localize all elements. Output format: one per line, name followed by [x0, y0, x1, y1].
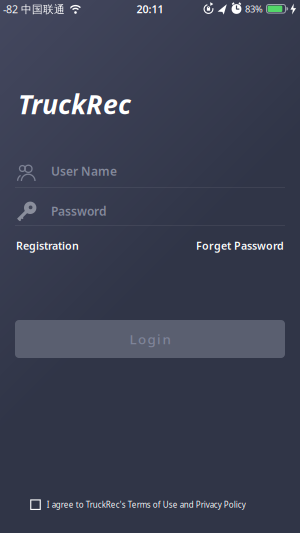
staticText: User Name [51, 163, 117, 179]
staticText: TruckRec [18, 86, 131, 122]
staticText: 83% [245, 3, 263, 15]
staticText: Login [129, 330, 170, 348]
button[interactable]: Registration [16, 238, 79, 253]
staticText: -82 中国联通 [3, 2, 65, 16]
staticText: Password [51, 203, 107, 219]
staticText: Forget Password [196, 238, 284, 253]
button[interactable]: Login [15, 320, 285, 358]
button[interactable]: Forget Password [196, 238, 284, 253]
button[interactable]: I agree to TruckRec's Terms of Use and P… [30, 499, 246, 510]
staticText: Registration [16, 238, 79, 253]
staticText: I agree to TruckRec's Terms of Use and P… [47, 499, 246, 510]
button[interactable]: User Name [0, 160, 300, 182]
button[interactable]: Password [0, 201, 300, 221]
staticText: 20:11 [136, 2, 163, 16]
